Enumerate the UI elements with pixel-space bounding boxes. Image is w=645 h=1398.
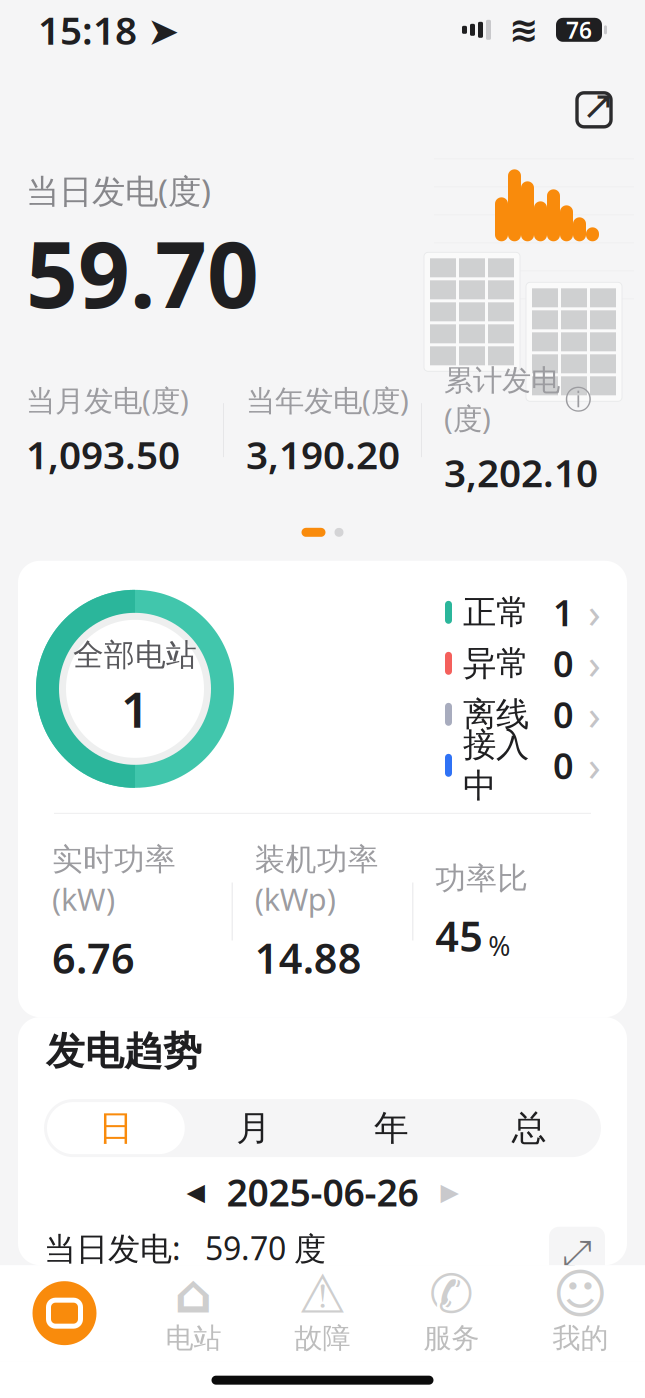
button[interactable]: 总 [460, 1102, 598, 1154]
staticText: ⌂ [174, 1264, 212, 1324]
staticText: 接入中 [463, 724, 529, 806]
staticText: 45 [435, 908, 483, 963]
staticText: › [588, 687, 601, 742]
staticText: 59.70 [26, 213, 259, 333]
staticText: % [488, 928, 510, 963]
staticText: 76 [566, 15, 592, 45]
staticText: › [588, 738, 601, 793]
staticText: 2025-06-26 [226, 1167, 418, 1217]
staticText: 月 [236, 1107, 271, 1149]
staticText: 3,190.20 [246, 428, 400, 480]
staticText: 发电趋势 [46, 1028, 202, 1075]
button[interactable]: Next day [426, 1169, 472, 1215]
button[interactable]: Expand chart [549, 1227, 605, 1283]
staticText: 当年发电(度) [246, 380, 409, 419]
staticText: 日 [98, 1107, 133, 1149]
staticText: 正常 [463, 592, 529, 633]
staticText: ⤢ [562, 1236, 592, 1273]
staticText: 我的 [552, 1321, 608, 1355]
staticText: ☺ [552, 1264, 608, 1324]
button[interactable]: Previous day [172, 1169, 218, 1215]
button[interactable]: 日 [47, 1102, 185, 1154]
staticText: ↗ [581, 82, 615, 127]
staticText: ◀ [186, 1178, 204, 1205]
button[interactable]: 正常 [445, 587, 601, 638]
staticText: 装机功率 (kWp) [255, 838, 379, 919]
staticText: ✆ [429, 1264, 474, 1324]
staticText: 0 [553, 741, 574, 789]
staticText: 当日发电(度) [26, 168, 211, 213]
button[interactable]: Share [565, 81, 623, 139]
staticText: 3,202.10 [444, 446, 598, 498]
staticText: 全部电站 [73, 636, 197, 674]
button[interactable]: 月 [185, 1102, 323, 1154]
staticText: ⚠ [298, 1264, 346, 1324]
staticText: 当日发电: 59.70 度 [44, 1227, 326, 1269]
staticText: 实时功率 (kW) [52, 838, 176, 919]
staticText: 1,093.50 [26, 428, 180, 480]
staticText: › [588, 585, 601, 640]
button[interactable]: Home [0, 1265, 129, 1361]
button[interactable]: ⚠ [258, 1265, 387, 1361]
button[interactable]: 异常 [445, 638, 601, 689]
staticText: 总 [512, 1107, 547, 1149]
button[interactable]: ⌂ [129, 1265, 258, 1361]
staticText: 15:18 ➤ [38, 4, 179, 55]
staticText: 当月发电(度) [26, 380, 189, 419]
staticText: ⓘ [565, 384, 592, 416]
staticText: 6.76 [52, 930, 135, 985]
staticText: 功率比 [435, 860, 528, 897]
staticText: 0 [553, 690, 574, 738]
staticText: 电站 [165, 1321, 221, 1355]
staticText: 故障 [294, 1321, 350, 1355]
staticText: 0 [553, 639, 574, 687]
staticText: › [588, 636, 601, 691]
button[interactable]: ✆ [387, 1265, 516, 1361]
staticText: ≋ [509, 10, 538, 49]
staticText: 1 [553, 588, 574, 636]
staticText: 异常 [463, 643, 529, 684]
button[interactable]: ☺ [516, 1265, 645, 1361]
staticText: ▶ [440, 1178, 458, 1205]
staticText: 累计发电(度) [444, 362, 560, 437]
staticText: 服务 [423, 1321, 479, 1355]
button[interactable]: 离线 [445, 689, 601, 740]
staticText: 1 [121, 676, 149, 741]
button[interactable]: 年 [322, 1102, 460, 1154]
staticText: 年 [374, 1107, 409, 1149]
staticText: 14.88 [255, 930, 362, 985]
staticText: 离线 [463, 694, 529, 735]
button[interactable]: 接入中 [445, 740, 601, 791]
